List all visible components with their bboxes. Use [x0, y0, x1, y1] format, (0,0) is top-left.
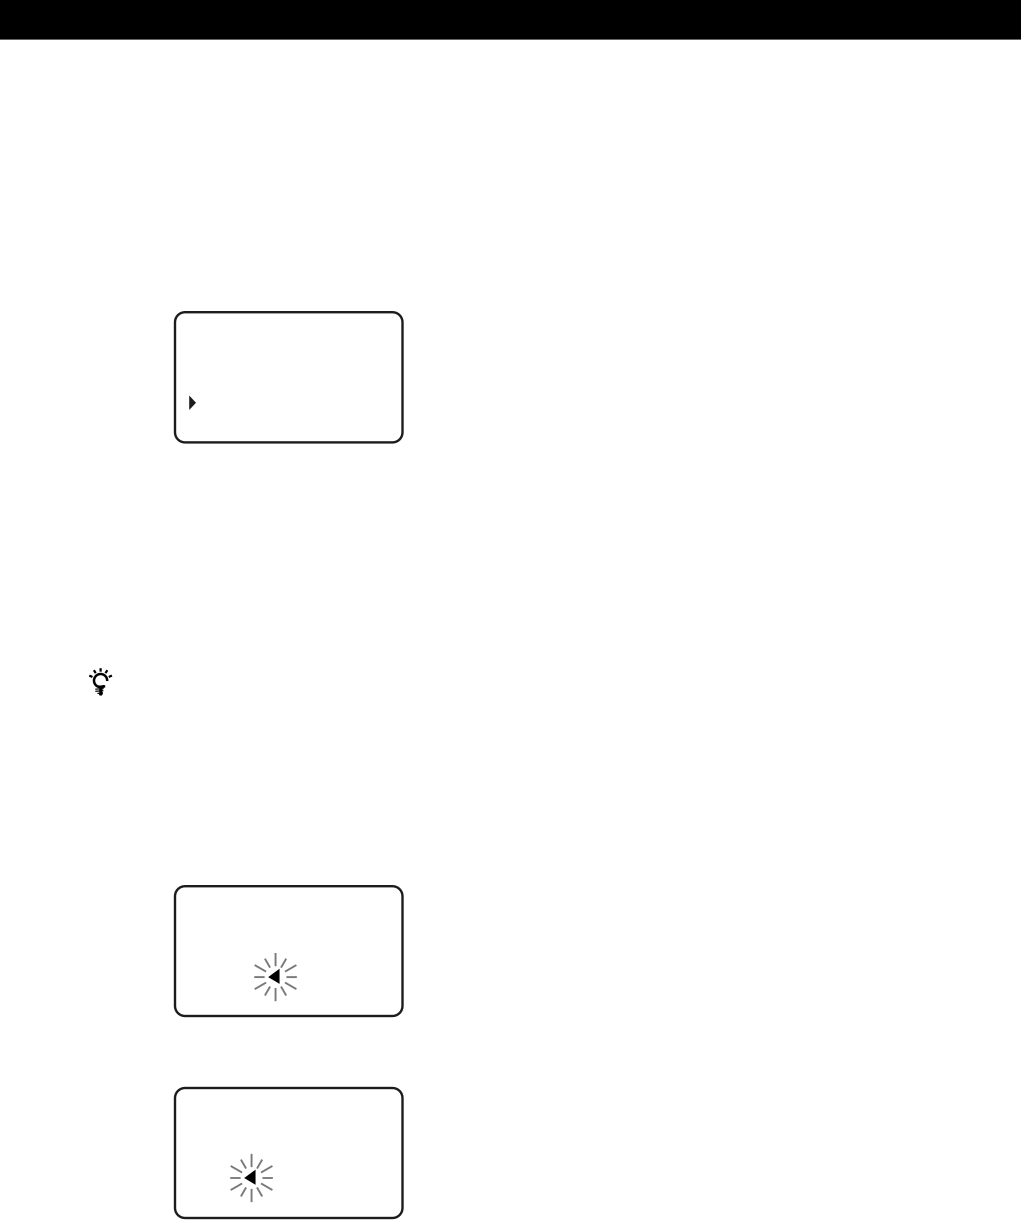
button[interactable]: Play video — [175, 312, 402, 442]
button[interactable]: Play video, loading — [175, 1088, 402, 1218]
button[interactable]: Play video, loading — [175, 886, 402, 1016]
